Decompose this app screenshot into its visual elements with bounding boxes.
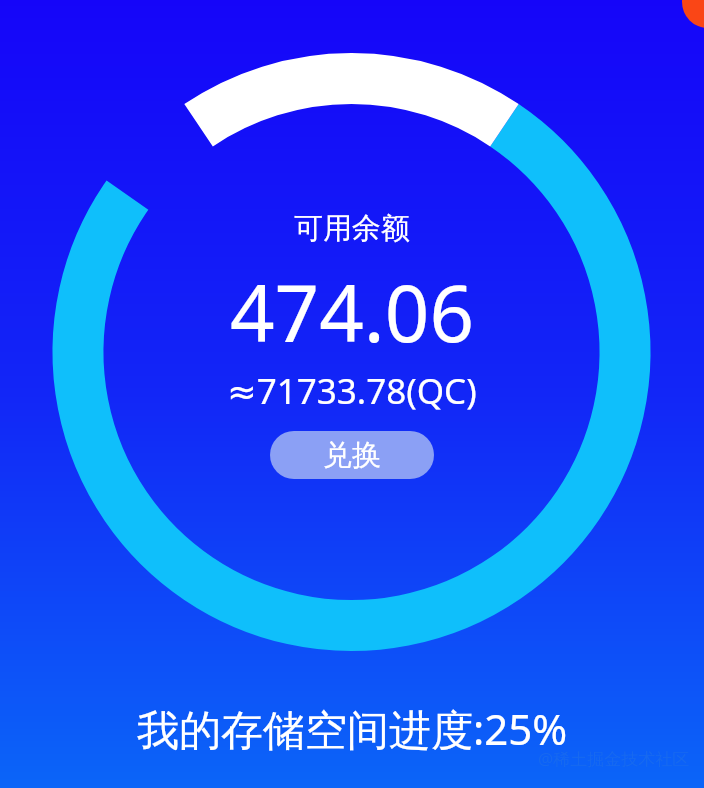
staticText: 可用余额: [294, 210, 410, 247]
staticText: 474.06: [230, 259, 474, 365]
staticText: 我的存储空间进度:25%: [0, 700, 704, 757]
staticText: ≈71733.78(QC): [227, 367, 477, 415]
staticText: 兑换: [323, 437, 381, 474]
button[interactable]: 兑换: [270, 431, 434, 479]
staticText: @稀土掘金技术社区: [538, 747, 690, 770]
